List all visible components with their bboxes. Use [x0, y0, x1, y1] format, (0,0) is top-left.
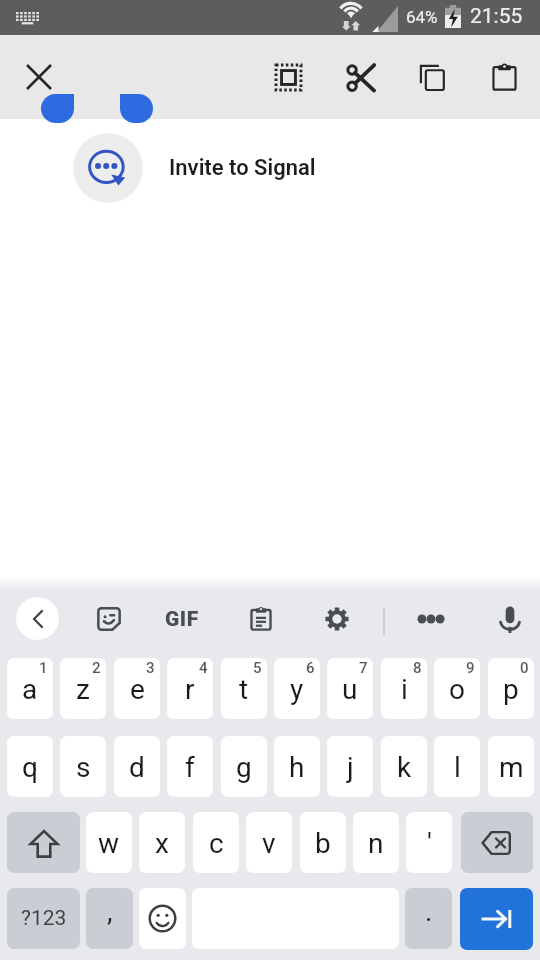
- staticText: o: [449, 673, 465, 706]
- button[interactable]: j: [327, 736, 373, 797]
- button[interactable]: l: [434, 736, 480, 797]
- staticText: d: [129, 751, 145, 784]
- staticText: 6: [306, 659, 315, 677]
- staticText: q: [22, 751, 38, 784]
- staticText: f: [185, 751, 195, 784]
- button[interactable]: h: [274, 736, 320, 797]
- button[interactable]: Back: [16, 597, 59, 640]
- staticText: u: [342, 673, 358, 706]
- staticText: c: [209, 827, 224, 860]
- button[interactable]: a: [7, 658, 53, 719]
- button[interactable]: e: [114, 658, 160, 719]
- button[interactable]: m: [488, 736, 534, 797]
- staticText: 2: [92, 659, 101, 677]
- button[interactable]: Stickers: [88, 598, 130, 640]
- staticText: j: [347, 751, 354, 784]
- button[interactable]: ': [406, 812, 452, 873]
- staticText: s: [76, 751, 91, 784]
- staticText: l: [454, 751, 461, 784]
- button[interactable]: Clipboard: [240, 598, 282, 640]
- button[interactable]: f: [167, 736, 213, 797]
- button[interactable]: z: [60, 658, 106, 719]
- button[interactable]: s: [60, 736, 106, 797]
- staticText: 9: [466, 659, 475, 677]
- staticText: ?123: [21, 906, 67, 931]
- button[interactable]: g: [221, 736, 267, 797]
- staticText: Invite to Signal: [169, 155, 316, 181]
- button[interactable]: Shift: [7, 812, 80, 873]
- staticText: 64%: [406, 7, 438, 27]
- staticText: 8: [413, 659, 422, 677]
- button[interactable]: p: [488, 658, 534, 719]
- button[interactable]: Backspace: [461, 812, 533, 873]
- button[interactable]: Cut: [334, 51, 386, 103]
- staticText: ,: [107, 895, 113, 928]
- staticText: r: [185, 673, 195, 706]
- staticText: a: [22, 673, 38, 706]
- button[interactable]: ,: [86, 888, 133, 949]
- button[interactable]: Emoji: [139, 888, 186, 949]
- staticText: 4: [199, 659, 208, 677]
- staticText: z: [76, 673, 90, 706]
- button[interactable]: i: [381, 658, 427, 719]
- button[interactable]: q: [7, 736, 53, 797]
- staticText: v: [262, 827, 276, 860]
- staticText: w: [98, 827, 120, 860]
- staticText: m: [499, 751, 524, 784]
- button[interactable]: More options: [410, 598, 452, 640]
- button[interactable]: Close: [13, 51, 65, 103]
- button[interactable]: v: [246, 812, 292, 873]
- staticText: x: [155, 827, 169, 860]
- staticText: 1: [39, 659, 48, 677]
- button[interactable]: o: [434, 658, 480, 719]
- staticText: e: [130, 673, 145, 706]
- button[interactable]: b: [300, 812, 346, 873]
- button[interactable]: .: [405, 888, 452, 949]
- staticText: g: [236, 751, 252, 784]
- staticText: p: [503, 673, 519, 706]
- button[interactable]: k: [381, 736, 427, 797]
- button[interactable]: y: [274, 658, 320, 719]
- button[interactable]: Paste: [478, 51, 530, 103]
- button[interactable]: w: [86, 812, 132, 873]
- button[interactable]: t: [221, 658, 267, 719]
- button[interactable]: u: [327, 658, 373, 719]
- button[interactable]: Copy: [406, 51, 458, 103]
- button[interactable]: d: [114, 736, 160, 797]
- staticText: ': [427, 827, 432, 860]
- staticText: .: [425, 895, 433, 928]
- button[interactable]: Invite to Signal: [0, 130, 540, 206]
- staticText: h: [289, 751, 305, 784]
- staticText: n: [368, 827, 384, 860]
- button[interactable]: Settings: [316, 598, 358, 640]
- button[interactable]: Select all: [262, 51, 314, 103]
- staticText: b: [315, 827, 331, 860]
- button[interactable]: ?123: [7, 888, 80, 949]
- staticText: 7: [359, 659, 368, 677]
- button[interactable]: GIF: [161, 598, 203, 640]
- staticText: i: [401, 673, 408, 706]
- staticText: 21:55: [470, 4, 523, 29]
- button[interactable]: c: [193, 812, 239, 873]
- staticText: GIF: [165, 607, 199, 632]
- staticText: 3: [146, 659, 155, 677]
- staticText: 5: [253, 659, 262, 677]
- button[interactable]: Voice input: [489, 598, 531, 640]
- button[interactable]: n: [353, 812, 399, 873]
- staticText: k: [397, 751, 412, 784]
- staticText: t: [239, 673, 249, 706]
- staticText: y: [290, 673, 304, 706]
- staticText: 0: [520, 659, 529, 677]
- button[interactable]: x: [139, 812, 185, 873]
- button[interactable]: r: [167, 658, 213, 719]
- button[interactable]: Enter: [460, 888, 533, 950]
